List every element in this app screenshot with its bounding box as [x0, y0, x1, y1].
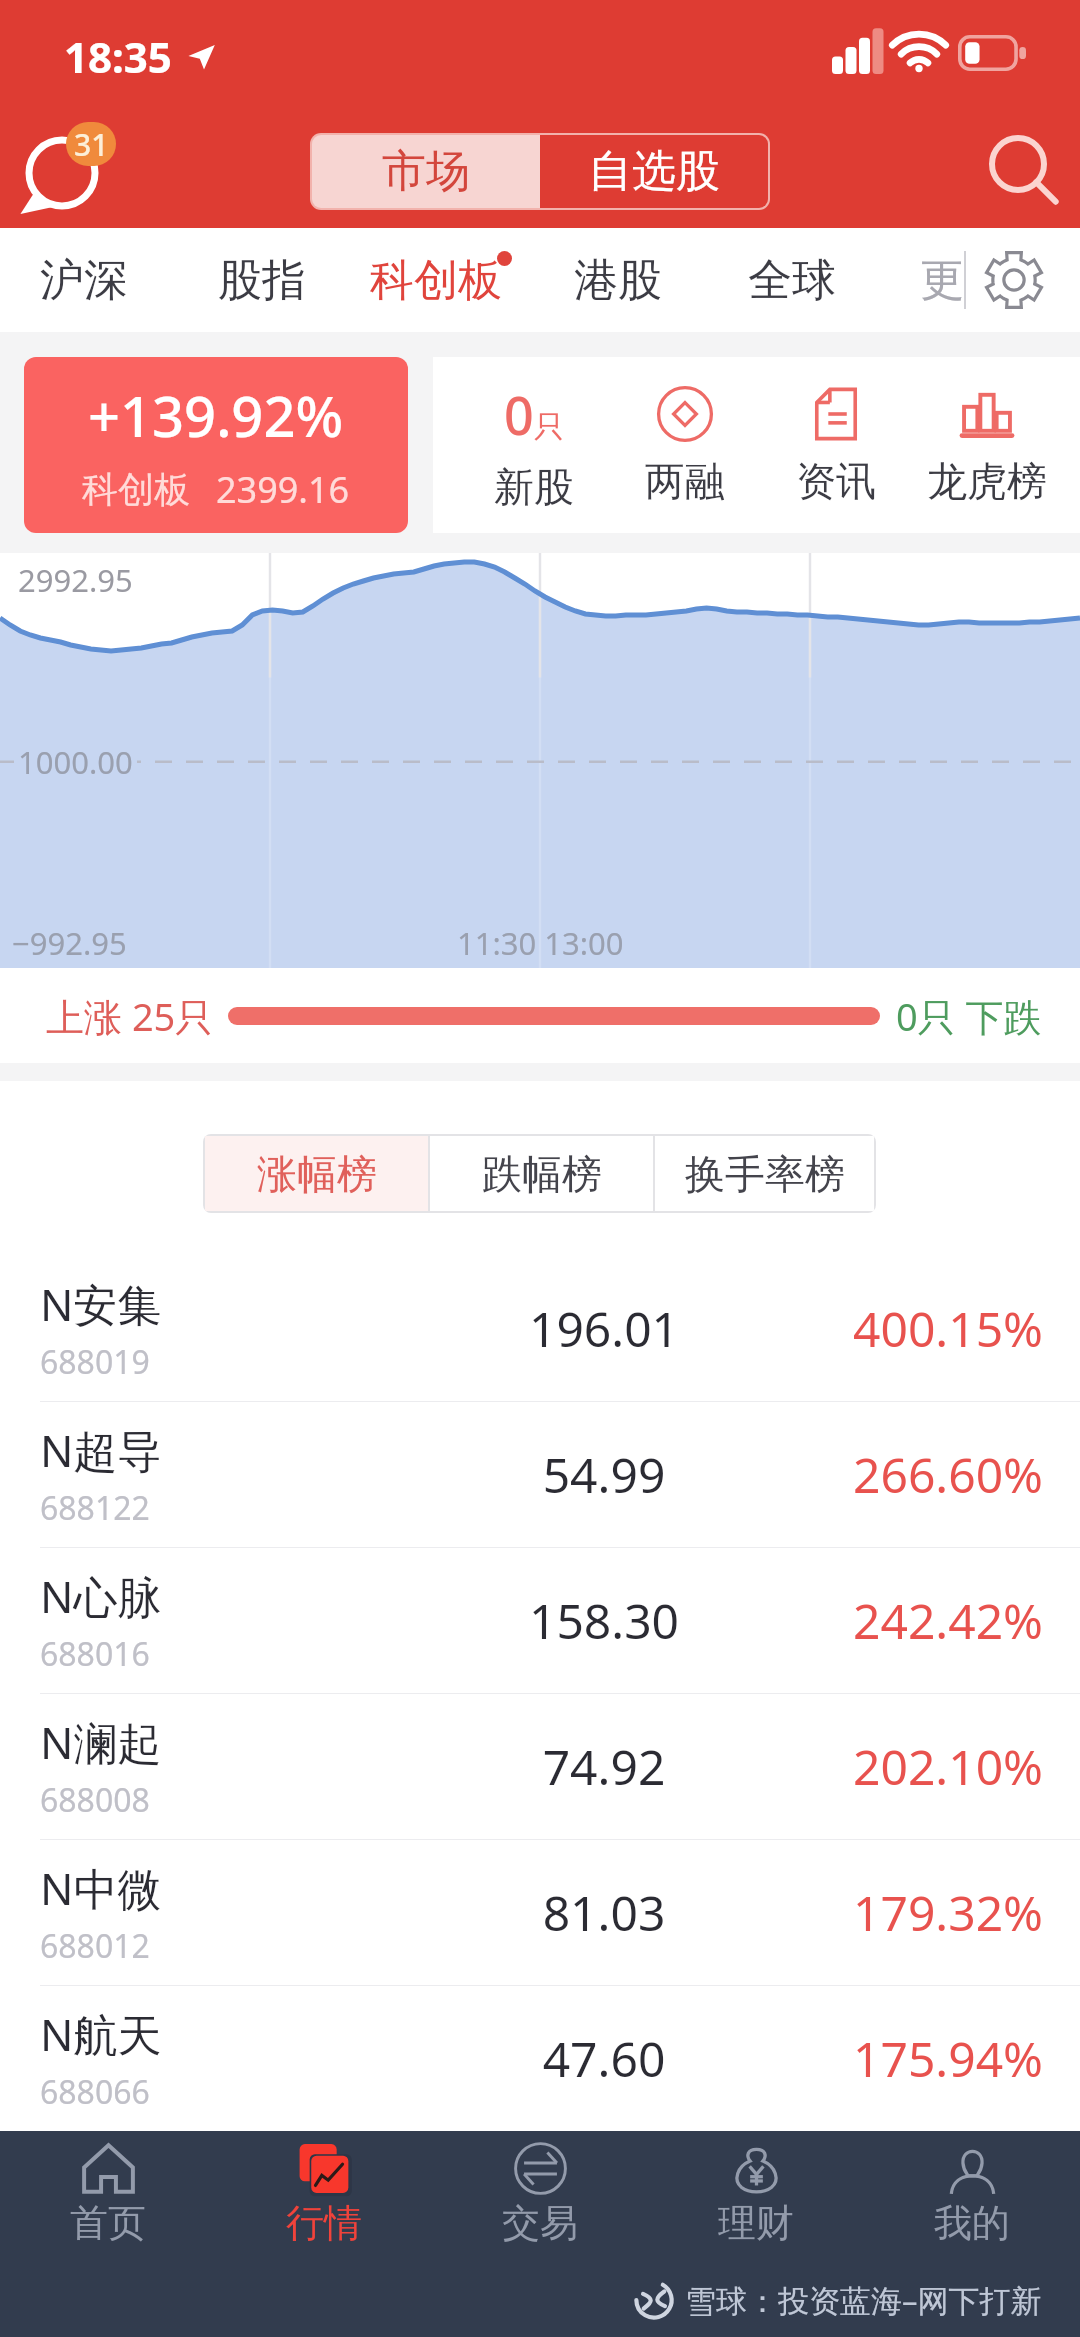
staticText: 沪深: [40, 253, 128, 308]
staticText: 688066: [40, 2070, 150, 2114]
staticText: −992.95: [12, 922, 127, 964]
button[interactable]: 理财: [648, 2131, 864, 2263]
staticText: 11:30 13:00: [457, 922, 624, 964]
staticText: 158.30: [444, 1588, 764, 1653]
staticText: 自选股: [588, 144, 720, 199]
staticText: 47.60: [444, 2026, 764, 2091]
staticText: 龙虎榜: [927, 456, 1047, 506]
staticText: 全球: [748, 253, 836, 308]
button[interactable]: 科创板: [370, 253, 502, 308]
staticText: 2992.95: [18, 559, 133, 601]
button[interactable]: 换手率榜: [655, 1136, 874, 1211]
staticText: 科创板: [82, 467, 190, 512]
button[interactable]: 港股: [574, 253, 662, 308]
staticText: 81.03: [444, 1880, 764, 1945]
staticText: 242.42%: [852, 1588, 1043, 1653]
staticText: 我的: [934, 2199, 1010, 2247]
staticText: 2399.16: [216, 465, 350, 514]
button[interactable]: N超导: [0, 1402, 1080, 1547]
button[interactable]: Search: [972, 124, 1064, 216]
staticText: 1000.00: [18, 741, 133, 783]
button[interactable]: 资讯: [760, 357, 911, 533]
button[interactable]: 0: [459, 357, 609, 533]
staticText: N中微: [40, 1858, 162, 1918]
staticText: 理财: [718, 2199, 794, 2247]
button[interactable]: 自选股: [540, 135, 768, 208]
staticText: 港股: [574, 253, 662, 308]
staticText: 0: [504, 379, 534, 450]
button[interactable]: 龙虎榜: [911, 357, 1062, 533]
button[interactable]: 沪深: [40, 253, 128, 308]
button[interactable]: N中微: [0, 1840, 1080, 1985]
staticText: 688008: [40, 1778, 150, 1822]
button[interactable]: N澜起: [0, 1694, 1080, 1839]
staticText: 18:35: [64, 28, 172, 85]
staticText: 市场: [382, 144, 470, 199]
staticText: 雪球：投资蓝海–网下打新: [685, 2279, 1042, 2321]
button[interactable]: +139.92%: [24, 357, 408, 533]
staticText: 400.15%: [852, 1296, 1043, 1361]
button[interactable]: N安集: [0, 1256, 1080, 1401]
staticText: 0只 下跌: [896, 990, 1042, 1042]
staticText: 涨幅榜: [257, 1149, 377, 1199]
button[interactable]: 首页: [0, 2131, 216, 2263]
button[interactable]: 两融: [609, 357, 760, 533]
staticText: 688122: [40, 1486, 150, 1530]
staticText: 换手率榜: [685, 1149, 845, 1199]
button[interactable]: N航天: [0, 1986, 1080, 2131]
staticText: 科创板: [370, 253, 502, 308]
staticText: 266.60%: [852, 1442, 1043, 1507]
staticText: N安集: [40, 1274, 162, 1334]
button[interactable]: 股指: [218, 253, 306, 308]
staticText: 74.92: [444, 1734, 764, 1799]
staticText: 31: [74, 124, 109, 165]
staticText: 两融: [645, 456, 725, 506]
button[interactable]: Messages: [18, 112, 128, 228]
staticText: 688019: [40, 1340, 150, 1384]
staticText: N澜起: [40, 1712, 162, 1772]
staticText: 更: [920, 253, 962, 308]
staticText: 新股: [494, 462, 574, 512]
staticText: 交易: [502, 2199, 578, 2247]
staticText: 688012: [40, 1924, 150, 1968]
button[interactable]: 行情: [216, 2131, 432, 2263]
staticText: +139.92%: [88, 377, 344, 453]
button[interactable]: N心脉: [0, 1548, 1080, 1693]
staticText: 股指: [218, 253, 306, 308]
staticText: 179.32%: [852, 1880, 1043, 1945]
button[interactable]: 跌幅榜: [430, 1136, 653, 1211]
staticText: N超导: [40, 1420, 162, 1480]
button[interactable]: 全球: [748, 253, 836, 308]
staticText: 跌幅榜: [482, 1149, 602, 1199]
staticText: 只: [534, 408, 564, 446]
staticText: 首页: [70, 2199, 146, 2247]
staticText: N心脉: [40, 1566, 162, 1626]
staticText: 688016: [40, 1632, 150, 1676]
staticText: N航天: [40, 2004, 162, 2064]
staticText: 54.99: [444, 1442, 764, 1507]
staticText: 资讯: [796, 456, 876, 506]
button[interactable]: 市场: [312, 135, 540, 208]
staticText: 196.01: [444, 1296, 764, 1361]
button[interactable]: Settings: [985, 251, 1043, 309]
staticText: 行情: [286, 2199, 362, 2247]
button[interactable]: 交易: [432, 2131, 648, 2263]
staticText: 上涨 25只: [46, 990, 214, 1042]
button[interactable]: 涨幅榜: [205, 1136, 428, 1211]
staticText: 202.10%: [852, 1734, 1043, 1799]
button[interactable]: 我的: [864, 2131, 1080, 2263]
staticText: 175.94%: [852, 2026, 1043, 2091]
button[interactable]: 更: [920, 240, 976, 320]
